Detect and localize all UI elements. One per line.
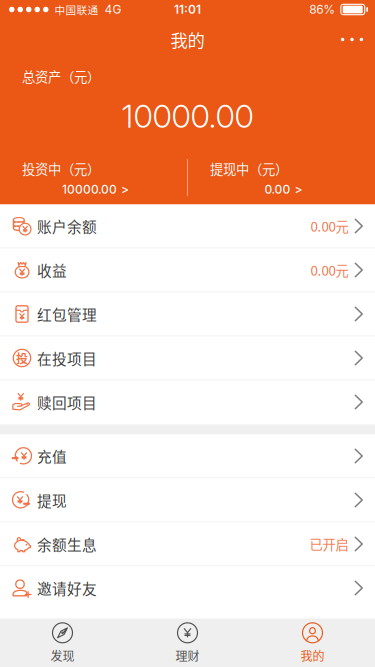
staticText: 我的 <box>170 27 204 52</box>
staticText: 我的 <box>300 647 324 664</box>
button[interactable]: 赎回项目 <box>0 380 375 424</box>
staticText: 理财 <box>175 647 199 664</box>
button[interactable]: 邀请好友 <box>0 566 375 610</box>
staticText: 11:01 <box>174 2 201 17</box>
staticText: 总资产（元） <box>22 66 100 86</box>
button[interactable]: 理财 <box>125 618 250 667</box>
button[interactable]: More options <box>329 19 375 59</box>
staticText: 账户余额 <box>37 215 97 237</box>
staticText: 红包管理 <box>37 303 97 325</box>
button[interactable]: 投 <box>0 336 375 380</box>
staticText: 收益 <box>37 259 67 281</box>
staticText: 邀请好友 <box>37 577 97 599</box>
staticText: 投 <box>16 349 28 367</box>
staticText: 0.00 <box>264 182 290 197</box>
button[interactable]: 红包管理 <box>0 292 375 336</box>
staticText: 中国联通 <box>54 2 98 17</box>
button[interactable]: 充值 <box>0 434 375 478</box>
staticText: > <box>121 182 129 197</box>
staticText: 在投项目 <box>37 347 97 369</box>
staticText: 赎回项目 <box>37 391 97 413</box>
button[interactable]: 提现 <box>0 478 375 522</box>
staticText: 发现 <box>50 647 74 664</box>
staticText: 86% <box>309 2 335 17</box>
staticText: 提现中（元） <box>210 159 288 178</box>
button[interactable]: 投资中（元） <box>0 146 187 201</box>
staticText: 10000.00 <box>62 182 117 197</box>
staticText: 10000.00 <box>121 97 253 135</box>
staticText: 提现 <box>37 489 67 511</box>
button[interactable]: 提现中（元） <box>188 146 375 201</box>
button[interactable]: 账户余额 <box>0 204 375 248</box>
staticText: 余额生息 <box>37 533 97 555</box>
staticText: > <box>294 182 302 197</box>
staticText: 已开启 <box>309 534 348 554</box>
button[interactable]: 余额生息 <box>0 522 375 566</box>
button[interactable]: 收益 <box>0 248 375 292</box>
staticText: 0.00元 <box>310 260 348 280</box>
staticText: 投资中（元） <box>22 159 100 178</box>
staticText: 4G <box>104 2 121 17</box>
button[interactable]: 我的 <box>250 618 375 667</box>
staticText: 充值 <box>37 445 67 467</box>
staticText: 0.00元 <box>310 216 348 236</box>
button[interactable]: 发现 <box>0 618 125 667</box>
